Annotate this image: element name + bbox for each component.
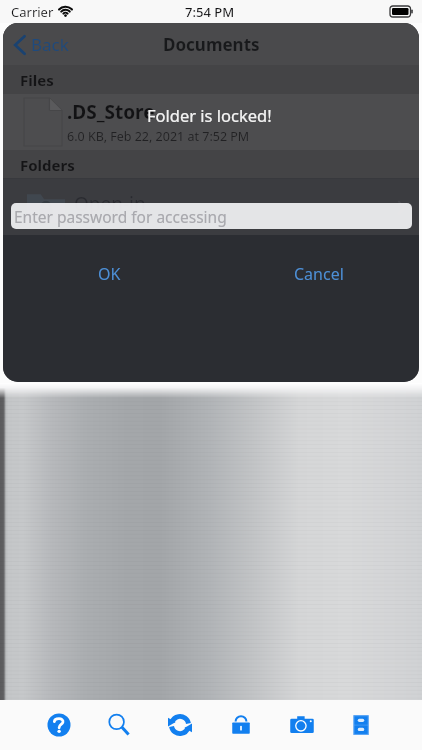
button[interactable]: Search	[97, 703, 141, 747]
staticText: .DS_Store	[67, 99, 155, 125]
staticText: 6.0 KB, Feb 22, 2021 at 7:52 PM	[67, 128, 250, 145]
staticText: Cancel	[294, 263, 344, 285]
button[interactable]: Open-in	[3, 179, 419, 235]
staticText: 7:54 PM	[185, 3, 235, 21]
button[interactable]: Enter password for accessing	[11, 203, 412, 229]
button[interactable]: Lock	[219, 703, 263, 747]
staticText: Files	[20, 70, 54, 90]
button[interactable]: .DS_Store	[3, 94, 419, 150]
button[interactable]: Camera	[280, 703, 324, 747]
staticText: Folder is locked!	[147, 104, 272, 126]
staticText: Enter password for accessing	[14, 206, 227, 227]
button[interactable]: Back	[3, 27, 81, 62]
staticText: Carrier	[11, 3, 54, 21]
button[interactable]: Files	[339, 703, 383, 747]
button[interactable]: Help	[37, 703, 81, 747]
staticText: Back	[31, 33, 69, 56]
button[interactable]: Cancel	[289, 261, 349, 287]
staticText: Folders	[20, 155, 75, 175]
staticText: Open-in	[74, 191, 146, 217]
staticText: Documents	[163, 33, 260, 56]
button[interactable]: Refresh	[158, 703, 202, 747]
button[interactable]: OK	[83, 261, 135, 287]
staticText: OK	[98, 263, 121, 285]
